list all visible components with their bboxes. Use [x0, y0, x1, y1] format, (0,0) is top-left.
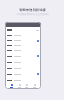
staticText: 一站式设备管理平台 让生活更便捷 — [15, 13, 49, 16]
staticText: 智能管理 轻松连接 — [19, 8, 46, 12]
